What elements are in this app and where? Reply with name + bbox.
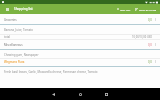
staticText: Fresh basil leaves, Garlic, Mozzarella c…	[4, 70, 98, 74]
button[interactable]: More options	[154, 59, 157, 64]
button[interactable]: Chewing gum, Newspaper	[0, 52, 160, 57]
staticText: Shopping list	[14, 7, 33, 11]
button[interactable]: Fresh basil leaves, Garlic, Mozzarella c…	[0, 69, 160, 74]
button[interactable]: SORT BY NAME	[135, 4, 160, 14]
button[interactable]: Miscellaneous	[0, 42, 160, 47]
button[interactable]: Recent apps	[101, 88, 111, 100]
button[interactable]: Wegmans Pizza	[0, 59, 160, 64]
button[interactable]: Back	[48, 88, 58, 100]
staticText: 0,0	[148, 43, 152, 47]
staticText: Groceries	[4, 18, 17, 22]
button[interactable]: ADD LIST	[117, 4, 131, 14]
staticText: 0,0	[148, 60, 152, 64]
button[interactable]: total	[0, 34, 160, 39]
staticText: Miscellaneous	[4, 43, 23, 47]
staticText: total	[4, 35, 11, 39]
button[interactable]: Open navigation drawer	[0, 4, 14, 14]
staticText: Banana, Juice, Tomato	[4, 28, 34, 32]
button[interactable]: More options	[154, 42, 157, 47]
button[interactable]: More options	[154, 17, 157, 22]
staticText: ADD LIST	[120, 8, 131, 11]
button[interactable]: Groceries	[0, 17, 160, 22]
staticText: 0,0	[148, 18, 152, 22]
staticText: Wegmans Pizza	[4, 60, 25, 64]
button[interactable]: Banana, Juice, Tomato	[0, 27, 160, 32]
button[interactable]: Home	[75, 88, 85, 100]
staticText: 10,00/13,00 USD	[132, 35, 153, 39]
staticText: SORT BY NAME	[139, 8, 157, 11]
staticText: Chewing gum, Newspaper	[4, 53, 39, 57]
